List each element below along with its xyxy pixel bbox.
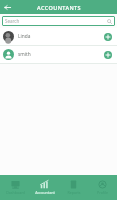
button[interactable]: Linda bbox=[0, 28, 117, 45]
button[interactable]: smith bbox=[0, 46, 117, 63]
button[interactable]: Dashboard bbox=[0, 175, 30, 200]
staticText: Accountant bbox=[35, 190, 55, 195]
staticText: smith bbox=[18, 51, 102, 58]
staticText: Dashboard bbox=[6, 190, 25, 195]
button[interactable]: Profile bbox=[88, 175, 117, 200]
button[interactable]: Back bbox=[0, 0, 14, 14]
button[interactable]: Add smith bbox=[102, 49, 114, 61]
button[interactable]: Add Linda bbox=[102, 31, 114, 43]
other: Search bbox=[107, 19, 112, 24]
button[interactable]: Reports bbox=[59, 175, 88, 200]
staticText: ACCOUNTANTS bbox=[37, 4, 81, 11]
button[interactable]: Search bbox=[2, 16, 115, 26]
staticText: Linda bbox=[18, 33, 102, 40]
staticText: Search bbox=[5, 18, 20, 24]
button[interactable]: Accountant bbox=[30, 175, 59, 200]
staticText: Profile bbox=[97, 190, 108, 195]
staticText: Reports bbox=[67, 190, 81, 195]
